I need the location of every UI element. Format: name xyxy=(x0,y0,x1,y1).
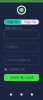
button[interactable]: Sign In xyxy=(4,19,21,24)
staticText: Create Account xyxy=(9,75,33,80)
button[interactable]: Sign Up xyxy=(21,19,39,24)
staticText: Confirm password xyxy=(6,58,30,62)
button[interactable]: Continue with Facebook xyxy=(31,93,33,96)
staticText: Password xyxy=(6,45,18,49)
staticText: Sign In xyxy=(7,20,18,24)
button[interactable]: Continue with Google xyxy=(20,93,23,96)
button[interactable]: Password xyxy=(4,43,39,51)
button[interactable]: Create Account xyxy=(4,74,39,81)
button[interactable] xyxy=(4,30,39,38)
button[interactable]: Remember me xyxy=(4,68,39,71)
staticText: Sign Up xyxy=(24,20,36,24)
staticText: Email address xyxy=(4,26,21,30)
button[interactable]: Continue with Apple xyxy=(10,93,12,96)
staticText: Remember me xyxy=(9,68,25,71)
button[interactable]: Confirm password xyxy=(4,56,39,64)
